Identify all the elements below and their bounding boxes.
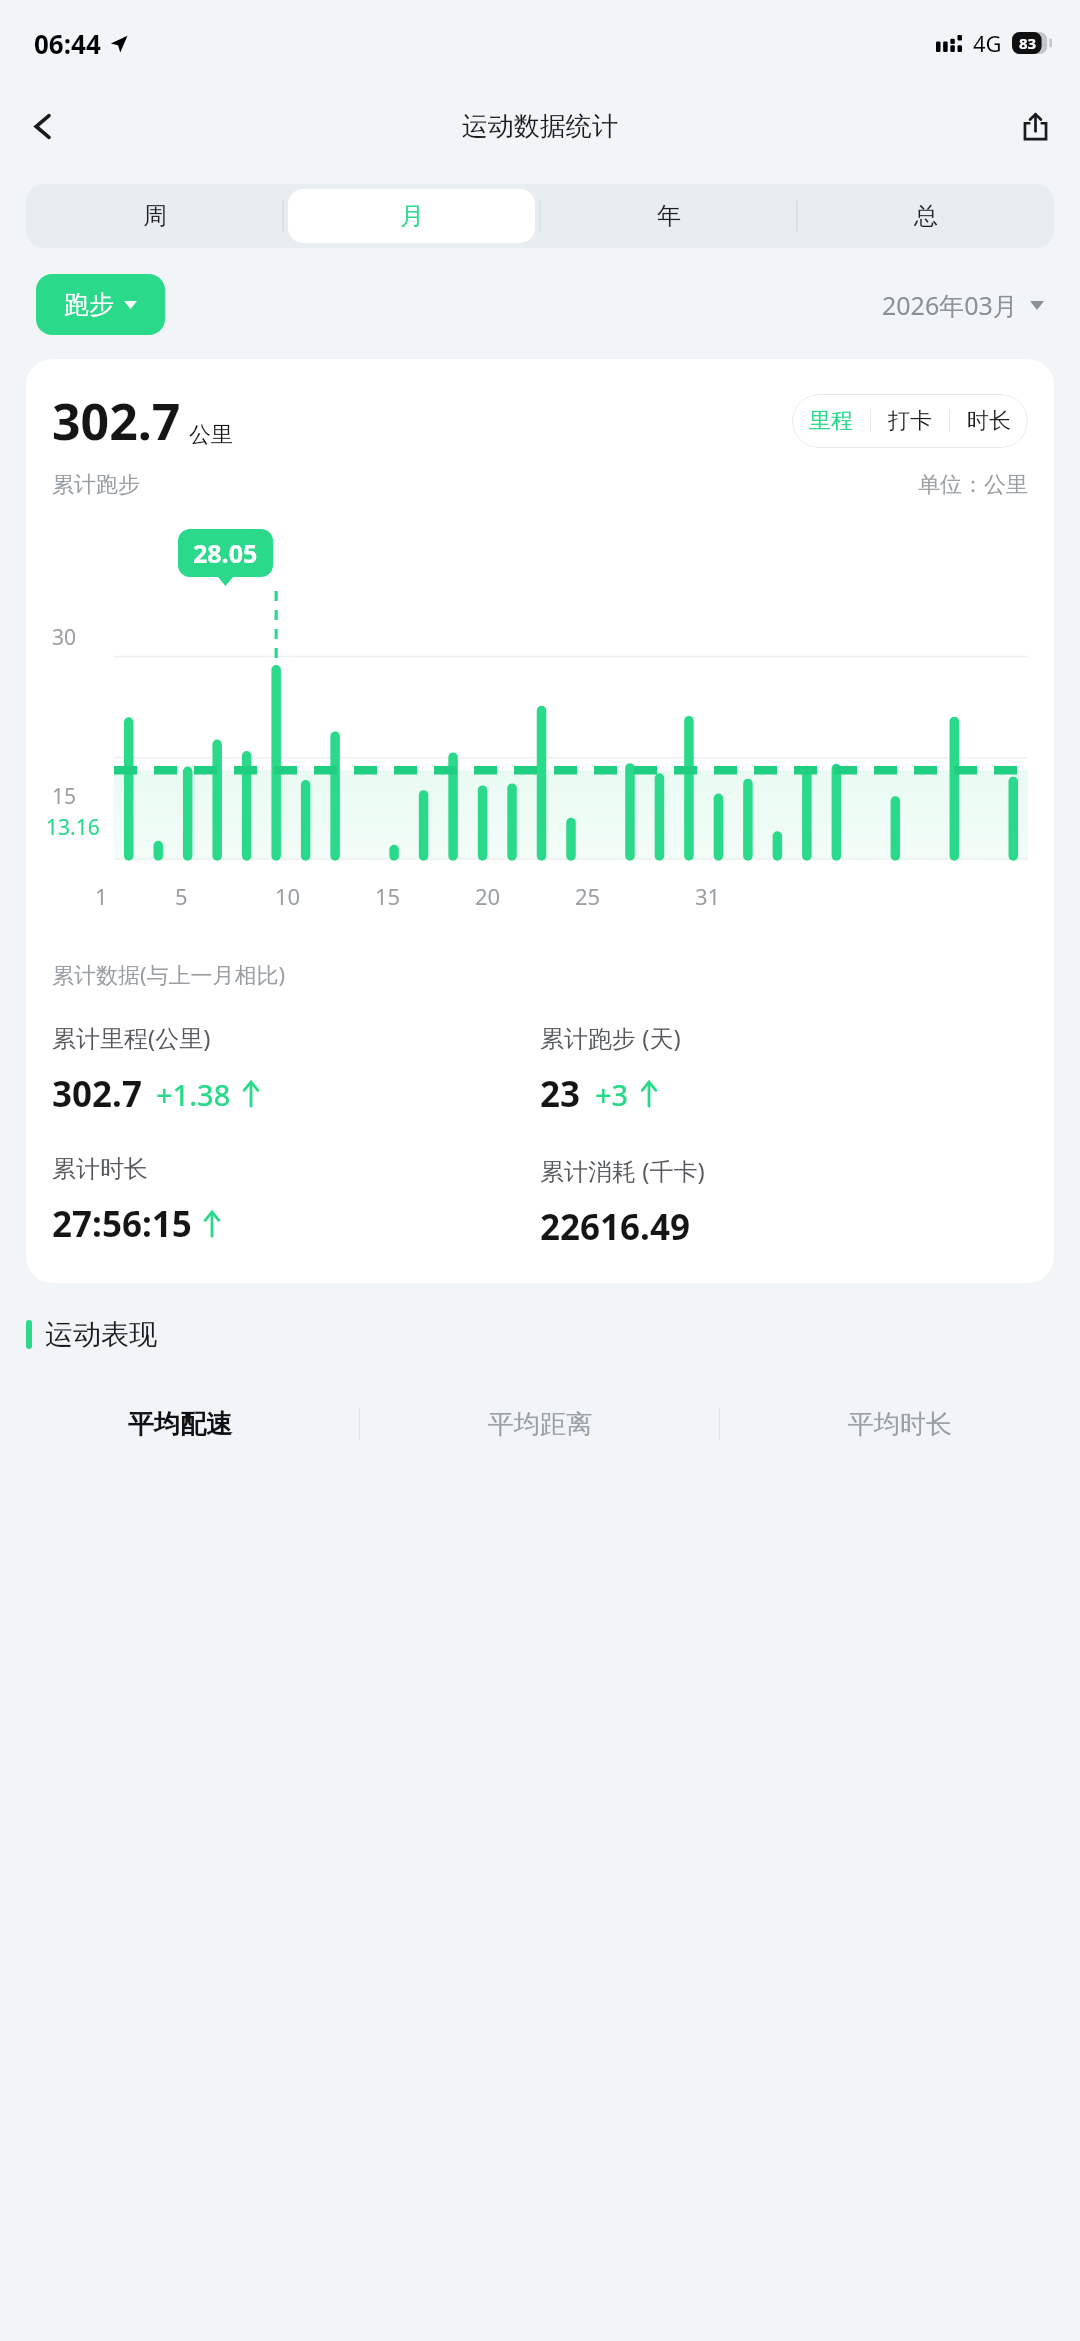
staticText: 公里 bbox=[189, 421, 233, 449]
staticText: 13.16 bbox=[46, 813, 100, 842]
staticText: 平均时长 bbox=[848, 1408, 952, 1441]
button[interactable]: 2026年03月 bbox=[882, 280, 1044, 330]
staticText: 周 bbox=[143, 201, 167, 231]
staticText: 15 bbox=[52, 782, 77, 811]
staticText: 23 bbox=[540, 1070, 581, 1118]
staticText: 4G bbox=[973, 28, 1002, 58]
staticText: 累计时长 bbox=[52, 1154, 148, 1184]
staticText: 27:56:15 bbox=[52, 1200, 192, 1248]
staticText: 月 bbox=[400, 201, 424, 231]
staticText: 累计跑步 bbox=[52, 471, 140, 499]
staticText: 31 bbox=[695, 881, 721, 911]
staticText: 5 bbox=[175, 881, 188, 911]
staticText: 累计消耗 (千卡) bbox=[540, 1154, 705, 1187]
staticText: 跑步 bbox=[64, 289, 114, 320]
staticText: 302.7 bbox=[52, 1070, 142, 1118]
button[interactable]: 平均时长 bbox=[720, 1388, 1080, 1460]
button[interactable]: 周 bbox=[31, 189, 278, 243]
button[interactable]: 平均配速 bbox=[0, 1388, 360, 1460]
staticText: 单位：公里 bbox=[918, 471, 1028, 499]
staticText: 10 bbox=[275, 881, 301, 911]
staticText: 2026年03月 bbox=[882, 288, 1018, 322]
staticText: 平均距离 bbox=[488, 1408, 592, 1441]
staticText: 83 bbox=[1019, 33, 1037, 53]
staticText: 20 bbox=[475, 881, 501, 911]
staticText: 打卡 bbox=[888, 407, 932, 435]
staticText: +3 bbox=[595, 1075, 629, 1114]
staticText: 302.7 bbox=[52, 387, 181, 455]
button[interactable]: 总 bbox=[802, 189, 1049, 243]
button[interactable]: 月 bbox=[288, 189, 535, 243]
staticText: 里程 bbox=[809, 407, 853, 435]
staticText: 06:44 bbox=[34, 26, 101, 61]
staticText: 1 bbox=[95, 881, 108, 911]
staticText: 累计跑步 (天) bbox=[540, 1021, 681, 1054]
button[interactable]: Share bbox=[1006, 97, 1064, 155]
button[interactable]: 平均距离 bbox=[360, 1388, 720, 1460]
staticText: 累计数据(与上一月相比) bbox=[52, 959, 286, 989]
staticText: 总 bbox=[914, 201, 938, 231]
button[interactable]: Back bbox=[14, 97, 72, 155]
staticText: 28.05 bbox=[193, 536, 258, 570]
button[interactable]: 年 bbox=[545, 189, 792, 243]
button[interactable]: 里程 bbox=[792, 394, 870, 448]
staticText: 15 bbox=[375, 881, 401, 911]
staticText: 累计里程(公里) bbox=[52, 1021, 211, 1054]
staticText: 时长 bbox=[967, 407, 1011, 435]
staticText: 运动表现 bbox=[45, 1317, 157, 1352]
staticText: 25 bbox=[575, 881, 601, 911]
staticText: 22616.49 bbox=[540, 1203, 690, 1251]
staticText: +1.38 bbox=[156, 1075, 231, 1114]
staticText: 30 bbox=[52, 623, 77, 652]
button[interactable]: 跑步 bbox=[36, 274, 165, 335]
staticText: 平均配速 bbox=[128, 1408, 232, 1441]
button[interactable]: 时长 bbox=[950, 394, 1028, 448]
staticText: 年 bbox=[657, 201, 681, 231]
button[interactable]: 打卡 bbox=[871, 394, 949, 448]
staticText: 运动数据统计 bbox=[462, 110, 618, 143]
